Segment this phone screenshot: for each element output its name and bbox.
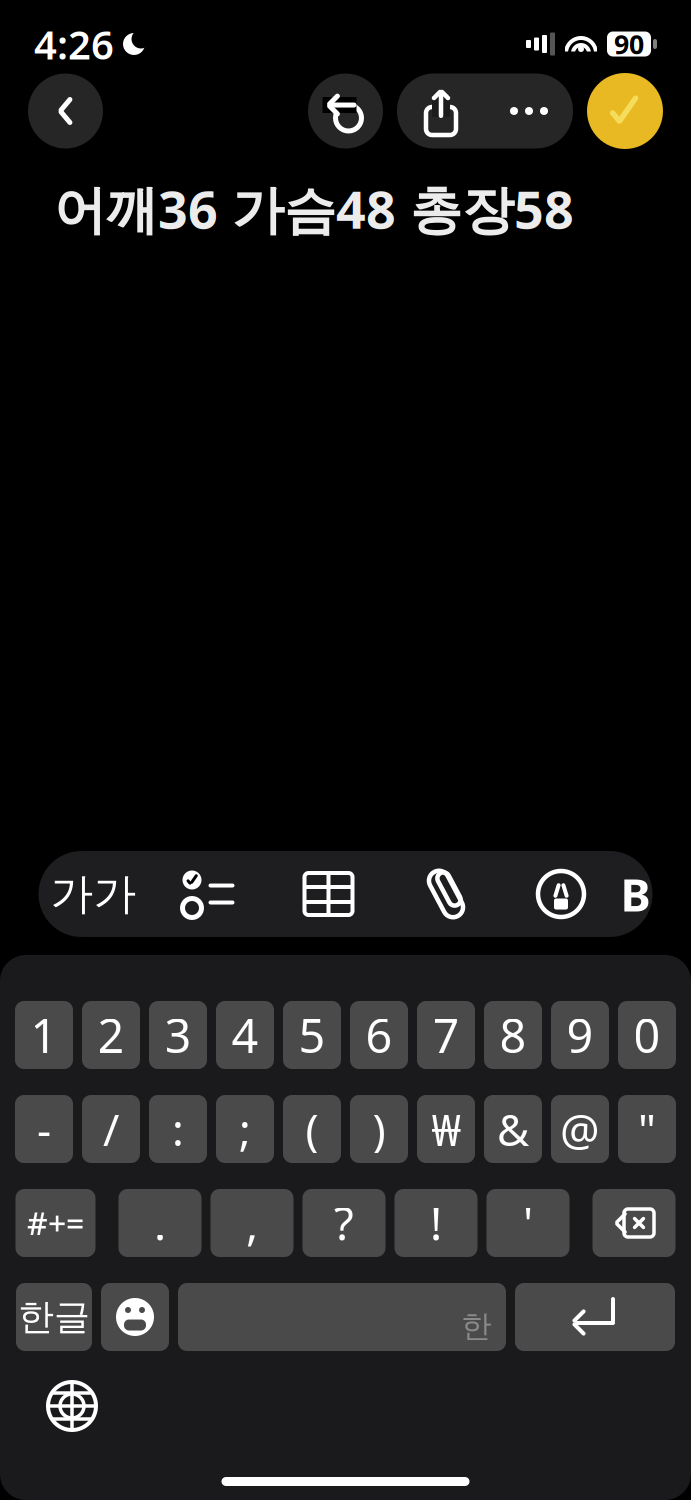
button[interactable]: : — [149, 1095, 207, 1163]
button[interactable]: 9 — [551, 1001, 609, 1069]
button[interactable]: Emoji — [101, 1283, 169, 1351]
button[interactable]: Table — [268, 851, 388, 937]
staticText: 1 — [30, 1004, 57, 1066]
button[interactable]: , — [210, 1189, 293, 1257]
staticText: 3 — [164, 1004, 191, 1066]
staticText: ₩ — [431, 1100, 460, 1158]
staticText: ? — [334, 1193, 354, 1253]
staticText: 어깨36 가슴48 총장58 — [54, 174, 574, 243]
button[interactable]: Back — [28, 73, 103, 148]
staticText: 90 — [614, 26, 644, 62]
button[interactable]: / — [82, 1095, 140, 1163]
button[interactable]: " — [618, 1095, 676, 1163]
staticText: 9 — [566, 1004, 593, 1066]
staticText: " — [638, 1100, 656, 1158]
staticText: , — [246, 1193, 258, 1253]
button[interactable]: Share — [397, 73, 485, 148]
button[interactable]: ₩ — [417, 1095, 475, 1163]
button[interactable]: ' — [486, 1189, 569, 1257]
button[interactable]: Delete — [592, 1189, 675, 1257]
button[interactable]: More — [485, 73, 573, 148]
staticText: 한글 — [18, 1295, 90, 1339]
button[interactable]: 6 — [350, 1001, 408, 1069]
staticText: 8 — [499, 1004, 526, 1066]
button[interactable]: 한글 — [16, 1283, 92, 1351]
button[interactable]: Done — [587, 73, 663, 149]
staticText: 가가 — [50, 868, 136, 920]
staticText: ) — [372, 1100, 385, 1158]
button[interactable]: Markup — [503, 851, 618, 937]
button[interactable]: Space — [178, 1283, 506, 1351]
staticText: 5 — [298, 1004, 325, 1066]
staticText: . — [154, 1193, 166, 1253]
staticText: 2 — [97, 1004, 124, 1066]
button[interactable]: 가가 — [38, 851, 148, 937]
button[interactable]: Switch keyboard — [35, 1369, 109, 1443]
button[interactable]: 1 — [15, 1001, 73, 1069]
staticText: 7 — [432, 1004, 459, 1066]
staticText: 한 — [461, 1307, 492, 1345]
staticText: & — [497, 1100, 529, 1158]
button[interactable]: Return — [515, 1283, 675, 1351]
staticText: @ — [560, 1100, 600, 1158]
button[interactable]: - — [15, 1095, 73, 1163]
button[interactable]: 7 — [417, 1001, 475, 1069]
button[interactable]: ! — [394, 1189, 477, 1257]
staticText: #+= — [27, 1202, 84, 1244]
button[interactable]: 4 — [216, 1001, 274, 1069]
button[interactable]: ) — [350, 1095, 408, 1163]
button[interactable]: #+= — [15, 1189, 95, 1257]
staticText: 4:26 — [34, 17, 114, 70]
staticText: 4 — [231, 1004, 258, 1066]
staticText: B — [620, 864, 650, 924]
button[interactable]: More tools — [618, 851, 652, 937]
button[interactable]: ( — [283, 1095, 341, 1163]
button[interactable]: ? — [302, 1189, 385, 1257]
staticText: ' — [523, 1193, 533, 1253]
button[interactable]: Checklist — [148, 851, 268, 937]
staticText: / — [103, 1100, 119, 1158]
staticText: - — [37, 1100, 51, 1158]
button[interactable]: 5 — [283, 1001, 341, 1069]
staticText: 6 — [365, 1004, 392, 1066]
button[interactable]: 3 — [149, 1001, 207, 1069]
staticText: : — [172, 1100, 184, 1158]
button[interactable]: & — [484, 1095, 542, 1163]
button[interactable]: ; — [216, 1095, 274, 1163]
button[interactable]: 8 — [484, 1001, 542, 1069]
button[interactable]: @ — [551, 1095, 609, 1163]
staticText: 0 — [633, 1004, 660, 1066]
button[interactable]: 2 — [82, 1001, 140, 1069]
staticText: ; — [239, 1100, 251, 1158]
button[interactable]: 0 — [618, 1001, 676, 1069]
button[interactable]: Undo — [308, 73, 383, 148]
button[interactable]: Attach — [388, 851, 503, 937]
staticText: ( — [305, 1100, 318, 1158]
button[interactable]: . — [118, 1189, 201, 1257]
staticText: ! — [430, 1193, 442, 1253]
